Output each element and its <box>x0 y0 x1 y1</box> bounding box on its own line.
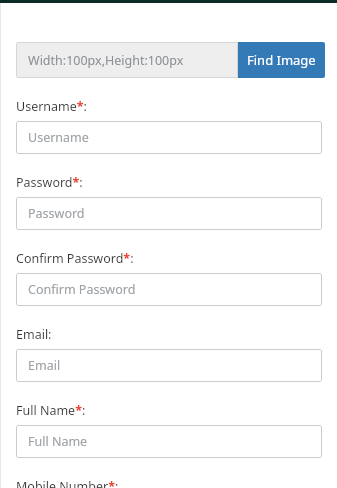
staticText: Password <box>28 205 85 222</box>
staticText: Confirm Password*: <box>16 250 134 267</box>
staticText: Full Name*: <box>16 402 86 419</box>
staticText: Confirm Password <box>28 281 136 298</box>
button[interactable]: Find Image <box>238 42 325 78</box>
button[interactable]: Username <box>16 121 322 154</box>
staticText: Full Name <box>28 433 88 450</box>
staticText: Username <box>28 129 89 146</box>
staticText: Mobile Number*: <box>16 478 119 488</box>
staticText: Email <box>28 357 61 374</box>
button[interactable]: Email <box>16 349 322 382</box>
button[interactable]: Width:100px,Height:100px <box>16 42 238 78</box>
staticText: Username*: <box>16 98 87 115</box>
staticText: Password*: <box>16 174 83 191</box>
button[interactable]: Password <box>16 197 322 230</box>
staticText: Width:100px,Height:100px <box>28 52 184 69</box>
button[interactable]: Confirm Password <box>16 273 322 306</box>
button[interactable]: Full Name <box>16 425 322 458</box>
staticText: Find Image <box>247 51 316 69</box>
staticText: Email: <box>16 326 52 343</box>
